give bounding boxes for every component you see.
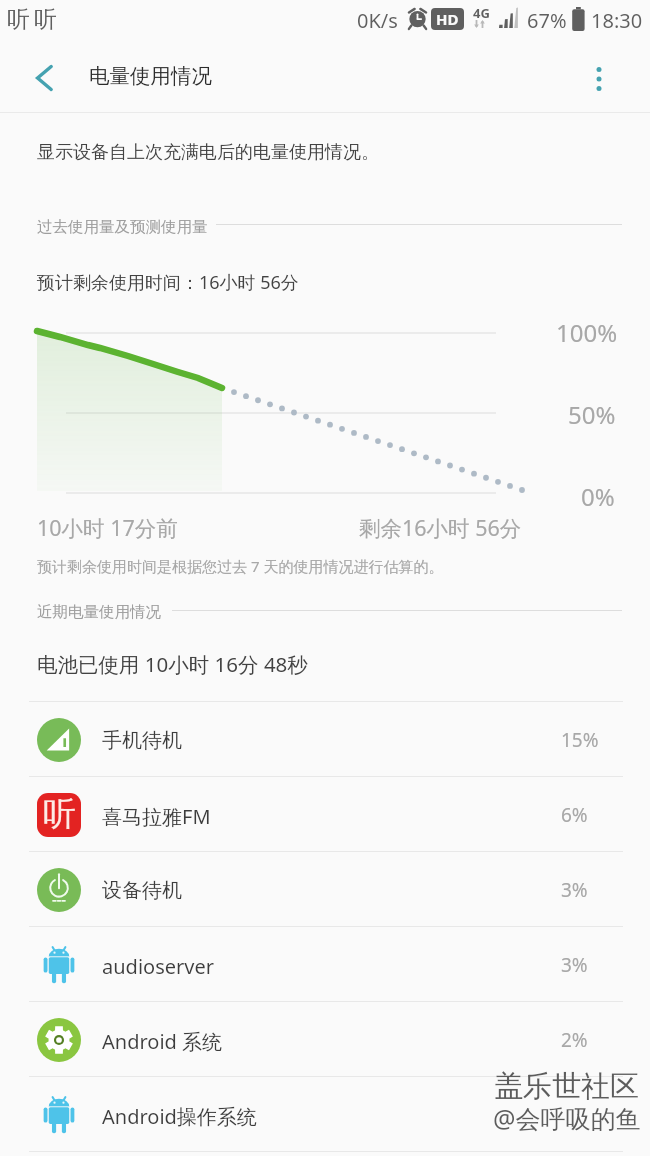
staticText: 喜马拉雅FM <box>102 803 211 830</box>
staticText: 过去使用量及预测使用量 <box>37 217 208 237</box>
staticText: 100% <box>556 316 618 349</box>
staticText: 预计剩余使用时间是根据您过去 7 天的使用情况进行估算的。 <box>37 556 444 576</box>
staticText: 听 <box>43 793 76 835</box>
staticText: 近期电量使用情况 <box>37 602 161 622</box>
staticText: Android 系统 <box>102 1028 223 1055</box>
button[interactable]: 手机待机 <box>0 702 650 777</box>
staticText: 盖乐世社区 <box>494 1068 639 1105</box>
staticText: audioserver <box>102 953 214 980</box>
staticText: 4G <box>473 4 490 22</box>
staticText: 0% <box>581 480 615 513</box>
button[interactable]: More options <box>571 45 627 112</box>
staticText: Android操作系统 <box>102 1103 257 1130</box>
button[interactable]: Android 系统 <box>0 1002 650 1077</box>
button[interactable]: Back <box>16 45 72 112</box>
staticText: 67% <box>527 7 567 34</box>
staticText: 0K/s <box>357 7 398 34</box>
staticText: 手机待机 <box>102 728 182 753</box>
staticText: 预计剩余使用时间：16小时 56分 <box>37 270 299 295</box>
staticText: 50% <box>568 398 616 431</box>
staticText: 10小时 17分前 <box>37 513 178 542</box>
staticText: 电池已使用 10小时 16分 48秒 <box>37 650 308 678</box>
staticText: 18:30 <box>591 7 643 34</box>
button[interactable]: 听 <box>0 777 650 852</box>
staticText: 2% <box>561 1027 588 1053</box>
staticText: 3% <box>561 952 588 978</box>
staticText: 3% <box>561 877 588 903</box>
staticText: 15% <box>561 727 599 753</box>
staticText: 设备待机 <box>102 878 182 903</box>
staticText: 电量使用情况 <box>89 63 212 89</box>
staticText: 6% <box>561 802 588 828</box>
staticText: 显示设备自上次充满电后的电量使用情况。 <box>37 141 379 164</box>
staticText: 剩余16小时 56分 <box>359 513 522 542</box>
staticText: @会呼吸的鱼 <box>493 1101 641 1135</box>
staticText: 听听 <box>5 5 59 34</box>
staticText: HD <box>436 9 459 29</box>
button[interactable]: 设备待机 <box>0 852 650 927</box>
button[interactable]: audioserver <box>0 927 650 1002</box>
button[interactable]: Android操作系统 <box>0 1077 650 1152</box>
